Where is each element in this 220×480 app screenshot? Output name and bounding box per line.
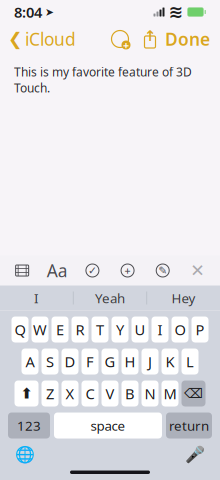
staticText: N xyxy=(144,384,155,403)
button[interactable]: E xyxy=(51,316,68,342)
staticText: D xyxy=(64,352,75,371)
button[interactable]: D xyxy=(61,348,78,374)
button[interactable]: X xyxy=(61,380,78,406)
button[interactable]: O xyxy=(171,316,188,342)
button[interactable]: Shift xyxy=(14,380,38,406)
button[interactable]: ❮ xyxy=(0,21,76,56)
staticText: Q xyxy=(14,320,25,339)
button[interactable]: L xyxy=(181,348,198,374)
button[interactable]: G xyxy=(101,348,118,374)
button[interactable]: V xyxy=(101,380,118,406)
button[interactable]: U xyxy=(131,316,148,342)
staticText: L xyxy=(186,352,194,371)
staticText: Done xyxy=(165,27,210,50)
staticText: E xyxy=(56,320,64,339)
button[interactable]: Z xyxy=(41,380,58,406)
button[interactable]: Close xyxy=(185,256,211,284)
staticText: 8:04 xyxy=(14,2,42,22)
staticText: + xyxy=(125,263,131,278)
button[interactable]: Share xyxy=(135,25,165,53)
staticText: T xyxy=(96,320,104,339)
button[interactable]: Yeah xyxy=(74,285,146,310)
staticText: Aa xyxy=(47,259,68,282)
staticText: J xyxy=(148,352,152,371)
staticText: S xyxy=(46,352,54,371)
button[interactable]: Hey xyxy=(147,285,220,310)
button[interactable]: B xyxy=(121,380,138,406)
staticText: ✕ xyxy=(190,261,205,280)
button[interactable]: S xyxy=(41,348,58,374)
staticText: P xyxy=(195,320,204,339)
staticText: R xyxy=(75,320,84,339)
button[interactable]: P xyxy=(191,316,208,342)
button[interactable]: M xyxy=(161,380,178,406)
staticText: F xyxy=(86,352,94,371)
staticText: G xyxy=(104,352,115,371)
button[interactable]: K xyxy=(161,348,178,374)
button[interactable]: Table xyxy=(9,256,35,284)
staticText: Z xyxy=(46,384,54,403)
button[interactable]: W xyxy=(31,316,48,342)
staticText: ≋ xyxy=(168,2,183,22)
staticText: U xyxy=(134,320,145,339)
button[interactable]: F xyxy=(81,348,98,374)
staticText: B xyxy=(125,384,135,403)
staticText: iCloud xyxy=(25,27,76,50)
button[interactable]: Add People xyxy=(105,25,135,53)
staticText: This is my favorite feature of 3D Touch. xyxy=(14,64,192,96)
button[interactable]: T xyxy=(91,316,108,342)
staticText: 🌐 xyxy=(15,445,35,464)
button[interactable]: Insert xyxy=(115,256,141,284)
staticText: I xyxy=(34,289,39,307)
staticText: + xyxy=(123,38,129,52)
button[interactable]: Checklist xyxy=(79,256,105,284)
button[interactable]: space xyxy=(54,412,162,438)
staticText: return xyxy=(169,417,209,434)
staticText: C xyxy=(85,384,94,403)
staticText: ✓ xyxy=(88,264,97,276)
button[interactable]: Change Keyboard xyxy=(12,444,38,464)
staticText: W xyxy=(33,320,47,339)
button[interactable]: Delete xyxy=(181,380,205,406)
button[interactable]: C xyxy=(81,380,98,406)
staticText: K xyxy=(165,352,174,371)
button[interactable]: J xyxy=(141,348,158,374)
button[interactable]: Markup xyxy=(150,256,176,284)
button[interactable]: A xyxy=(21,348,38,374)
staticText: Yeah xyxy=(95,289,125,307)
staticText: 123 xyxy=(17,417,41,434)
staticText: ⌫ xyxy=(184,386,203,401)
staticText: ↑ xyxy=(144,28,156,44)
staticText: V xyxy=(105,384,114,403)
staticText: ➤ xyxy=(42,6,54,18)
button[interactable]: H xyxy=(121,348,138,374)
button[interactable]: N xyxy=(141,380,158,406)
button[interactable]: 123 xyxy=(8,412,50,438)
button[interactable]: Y xyxy=(111,316,128,342)
button[interactable]: Done xyxy=(165,21,220,56)
staticText: O xyxy=(174,320,185,339)
staticText: Hey xyxy=(172,289,196,307)
staticText: M xyxy=(163,384,176,403)
staticText: I xyxy=(157,320,162,339)
staticText: space xyxy=(90,417,125,434)
staticText: ❮ xyxy=(8,29,23,49)
button[interactable]: I xyxy=(151,316,168,342)
button[interactable]: Dictation xyxy=(182,444,208,464)
staticText: H xyxy=(124,352,135,371)
button[interactable]: return xyxy=(166,412,212,438)
staticText: 🎤 xyxy=(185,445,205,464)
staticText: X xyxy=(65,384,74,403)
button[interactable]: Format xyxy=(44,256,70,284)
staticText: ⬆ xyxy=(20,385,32,402)
button[interactable]: R xyxy=(71,316,88,342)
button[interactable]: I xyxy=(0,285,73,310)
staticText: A xyxy=(25,352,34,371)
staticText: ✎ xyxy=(158,264,167,276)
staticText: Y xyxy=(116,320,124,339)
button[interactable]: Q xyxy=(11,316,28,342)
